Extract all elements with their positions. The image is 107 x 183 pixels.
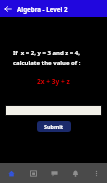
button[interactable]: Notifications xyxy=(65,163,86,183)
staticText: calculate the value of : xyxy=(13,59,81,67)
button[interactable]: Submit xyxy=(37,121,71,132)
button[interactable]: Back xyxy=(2,3,14,15)
button[interactable]: Home xyxy=(0,163,22,183)
button[interactable]: More options xyxy=(86,163,107,183)
staticText: If x = 2, y = 3 and z = 4, xyxy=(13,49,80,57)
staticText: Algebra - Level 2 xyxy=(17,5,68,13)
button[interactable]: Recents xyxy=(22,163,44,183)
staticText: 2x + 3y + z xyxy=(37,77,70,86)
staticText: Submit xyxy=(44,123,64,130)
button[interactable]: Messages xyxy=(44,163,65,183)
